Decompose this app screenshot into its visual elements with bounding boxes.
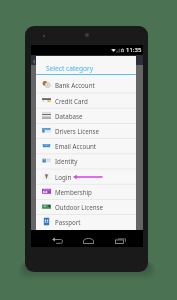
staticText: Select category — [46, 64, 94, 73]
staticText: Passport — [55, 218, 81, 226]
button[interactable]: Bank Account — [36, 77, 136, 92]
button[interactable]: Home — [81, 233, 95, 247]
button[interactable]: Outdoor License — [36, 199, 136, 214]
button[interactable]: Identity — [36, 153, 136, 168]
button[interactable]: Drivers License — [36, 123, 136, 138]
button[interactable]: Email Account — [36, 138, 136, 153]
staticText: Database — [55, 112, 83, 120]
staticText: ‹ — [33, 55, 36, 66]
button[interactable]: Membership — [36, 184, 136, 199]
button[interactable]: Credit Card — [36, 93, 136, 108]
staticText: Email Account — [55, 142, 97, 150]
button[interactable]: Back — [50, 233, 64, 247]
button[interactable]: Login — [36, 169, 136, 184]
staticText: Bank Account — [55, 81, 95, 89]
button[interactable]: Database — [36, 108, 136, 123]
staticText: Credit Card — [55, 97, 88, 105]
staticText: Login — [55, 173, 72, 181]
staticText: Drivers License — [55, 127, 100, 135]
staticText: Outdoor License — [55, 203, 103, 211]
staticText: Identity — [55, 157, 78, 165]
staticText: 11:35 — [126, 46, 142, 54]
button[interactable]: Recent apps — [113, 233, 127, 247]
staticText: Membership — [55, 188, 92, 196]
button[interactable]: Passport — [36, 214, 136, 229]
